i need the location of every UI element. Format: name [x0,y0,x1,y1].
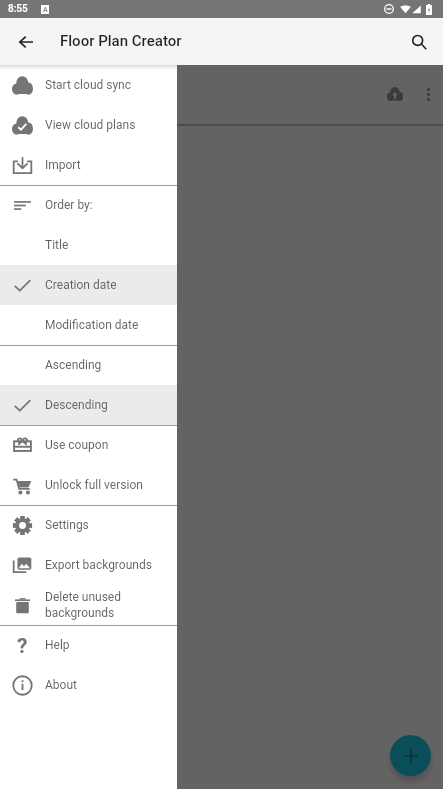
button[interactable]: Search [403,26,435,58]
button[interactable]: View cloud plans [0,105,177,145]
button[interactable]: Descending [0,385,177,425]
staticText: Floor Plan Creator [60,32,182,50]
button[interactable]: Creation date [0,265,177,305]
button[interactable]: About [0,665,177,705]
staticText: Ascending [45,358,102,372]
staticText: Creation date [45,278,117,292]
staticText: Start cloud sync [45,78,132,92]
button[interactable]: Modification date [0,305,177,345]
button[interactable]: Order by: [0,185,177,225]
button[interactable]: Delete unused backgrounds [0,585,177,625]
staticText: 8:55 [8,3,28,15]
staticText: View cloud plans [45,118,136,132]
button[interactable]: Ascending [0,345,177,385]
staticText: Unlock full version [45,478,143,492]
staticText: ? [17,634,28,655]
button[interactable]: Back [10,26,42,58]
staticText: Settings [45,518,89,532]
staticText: Export backgrounds [45,558,152,572]
button[interactable]: Title [0,225,177,265]
button[interactable]: Upload to cloud [382,81,408,107]
staticText: Use coupon [45,438,109,452]
button[interactable]: Unlock full version [0,465,177,505]
button[interactable]: Use coupon [0,425,177,465]
staticText: Modification date [45,318,139,332]
button[interactable]: Start cloud sync [0,65,177,105]
staticText: Order by: [45,198,93,212]
button[interactable]: Import [0,145,177,185]
button[interactable]: Add floor plan [390,735,431,776]
staticText: Descending [45,398,108,412]
staticText: Delete unused backgrounds [45,590,121,620]
button[interactable]: More options [415,81,441,107]
button[interactable]: Export backgrounds [0,545,177,585]
staticText: Import [45,158,81,172]
staticText: Title [45,238,69,252]
staticText: About [45,678,77,692]
button[interactable]: ? [0,625,177,665]
button[interactable]: Settings [0,505,177,545]
staticText: Help [45,638,70,652]
staticText: A [43,6,48,14]
